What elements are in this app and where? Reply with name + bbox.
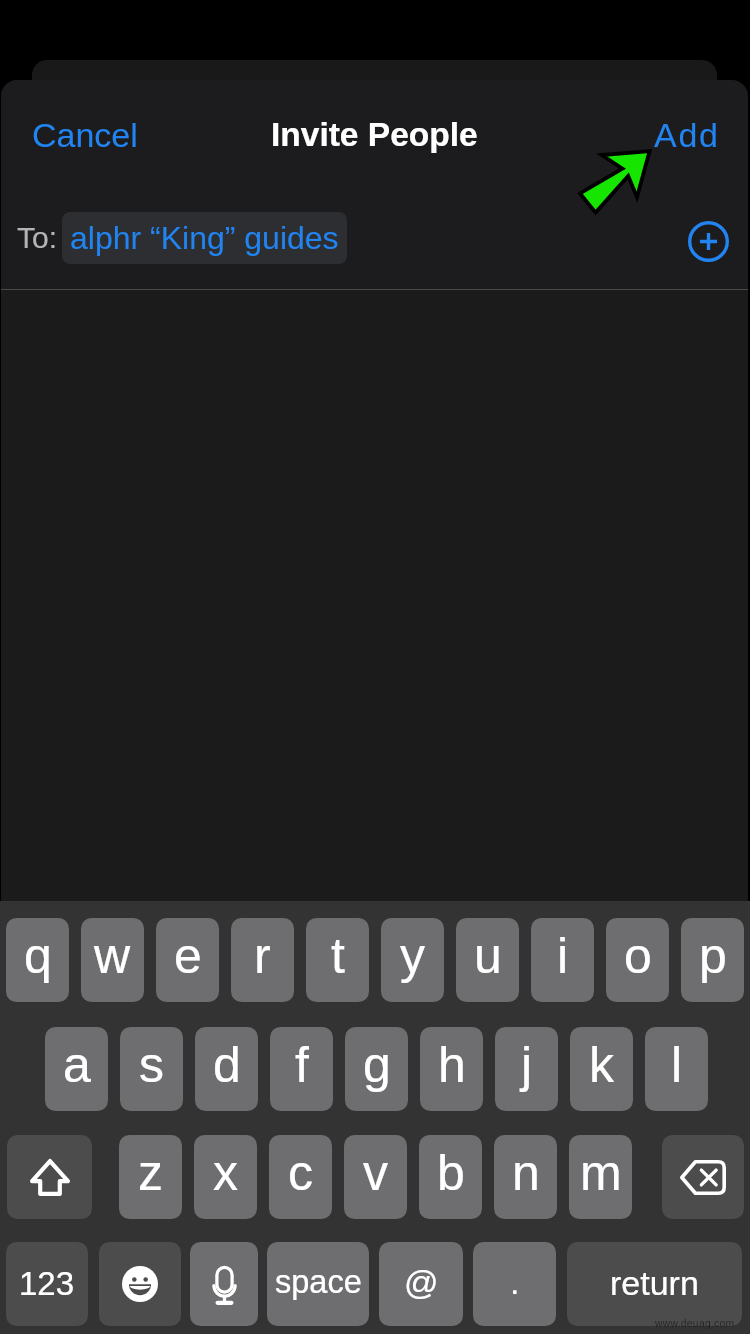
staticText: Invite People bbox=[271, 116, 478, 153]
staticText: z bbox=[138, 1145, 163, 1201]
staticText: l bbox=[671, 1037, 683, 1093]
button[interactable]: alphr “King” guides bbox=[62, 212, 347, 264]
staticText: c bbox=[288, 1145, 313, 1201]
staticText: q bbox=[24, 928, 52, 984]
button[interactable]: q bbox=[6, 918, 69, 1002]
button[interactable]: s bbox=[120, 1027, 183, 1111]
staticText: u bbox=[474, 928, 502, 984]
button[interactable]: b bbox=[419, 1135, 482, 1219]
button[interactable]: n bbox=[494, 1135, 557, 1219]
button[interactable]: Cancel bbox=[19, 107, 151, 163]
button[interactable]: m bbox=[569, 1135, 632, 1219]
staticText: x bbox=[213, 1145, 238, 1201]
staticText: t bbox=[331, 928, 345, 984]
button[interactable]: . bbox=[473, 1242, 556, 1326]
staticText: www.deuaq.com bbox=[655, 1318, 735, 1330]
staticText: v bbox=[363, 1145, 388, 1201]
button[interactable]: a bbox=[45, 1027, 108, 1111]
staticText: . bbox=[510, 1263, 520, 1301]
staticText: Add bbox=[654, 116, 720, 154]
staticText: 123 bbox=[19, 1265, 75, 1302]
staticText: n bbox=[512, 1145, 540, 1201]
button[interactable]: Dictation bbox=[190, 1242, 258, 1326]
staticText: j bbox=[521, 1037, 533, 1093]
button[interactable]: w bbox=[81, 918, 144, 1002]
button[interactable]: Shift bbox=[7, 1135, 92, 1219]
staticText: space bbox=[275, 1264, 362, 1300]
staticText: e bbox=[174, 928, 202, 984]
button[interactable]: u bbox=[456, 918, 519, 1002]
button[interactable]: p bbox=[681, 918, 744, 1002]
staticText: Cancel bbox=[32, 116, 138, 154]
staticText: k bbox=[589, 1037, 614, 1093]
button[interactable]: o bbox=[606, 918, 669, 1002]
staticText: alphr “King” guides bbox=[70, 220, 339, 256]
staticText: m bbox=[580, 1145, 622, 1201]
staticText: a bbox=[63, 1037, 91, 1093]
staticText: p bbox=[699, 928, 727, 984]
button[interactable]: x bbox=[194, 1135, 257, 1219]
staticText: To: bbox=[17, 221, 58, 255]
button[interactable]: @ bbox=[379, 1242, 463, 1326]
button[interactable]: l bbox=[645, 1027, 708, 1111]
button[interactable]: i bbox=[531, 918, 594, 1002]
staticText: @ bbox=[404, 1263, 439, 1301]
button[interactable]: Backspace bbox=[662, 1135, 744, 1219]
button[interactable]: v bbox=[344, 1135, 407, 1219]
button[interactable]: r bbox=[231, 918, 294, 1002]
button[interactable]: j bbox=[495, 1027, 558, 1111]
staticText: i bbox=[557, 928, 569, 984]
button[interactable]: g bbox=[345, 1027, 408, 1111]
staticText: return bbox=[610, 1264, 699, 1302]
staticText: h bbox=[438, 1037, 466, 1093]
button[interactable]: Add bbox=[641, 107, 733, 163]
staticText: o bbox=[624, 928, 652, 984]
button[interactable]: e bbox=[156, 918, 219, 1002]
staticText: d bbox=[213, 1037, 241, 1093]
button[interactable]: f bbox=[270, 1027, 333, 1111]
button[interactable]: c bbox=[269, 1135, 332, 1219]
staticText: w bbox=[94, 928, 131, 984]
button[interactable]: z bbox=[119, 1135, 182, 1219]
button[interactable]: t bbox=[306, 918, 369, 1002]
staticText: s bbox=[139, 1037, 164, 1093]
button[interactable]: Emoji bbox=[99, 1242, 181, 1326]
button[interactable]: 123 bbox=[6, 1242, 88, 1326]
staticText: f bbox=[295, 1037, 309, 1093]
staticText: r bbox=[254, 928, 271, 984]
button[interactable]: Add contact bbox=[685, 218, 731, 264]
button[interactable]: k bbox=[570, 1027, 633, 1111]
button[interactable]: d bbox=[195, 1027, 258, 1111]
button[interactable]: y bbox=[381, 918, 444, 1002]
button[interactable]: h bbox=[420, 1027, 483, 1111]
staticText: b bbox=[437, 1145, 465, 1201]
button[interactable]: return bbox=[567, 1242, 742, 1326]
staticText: y bbox=[400, 928, 425, 984]
staticText: g bbox=[363, 1037, 391, 1093]
button[interactable]: space bbox=[267, 1242, 369, 1326]
